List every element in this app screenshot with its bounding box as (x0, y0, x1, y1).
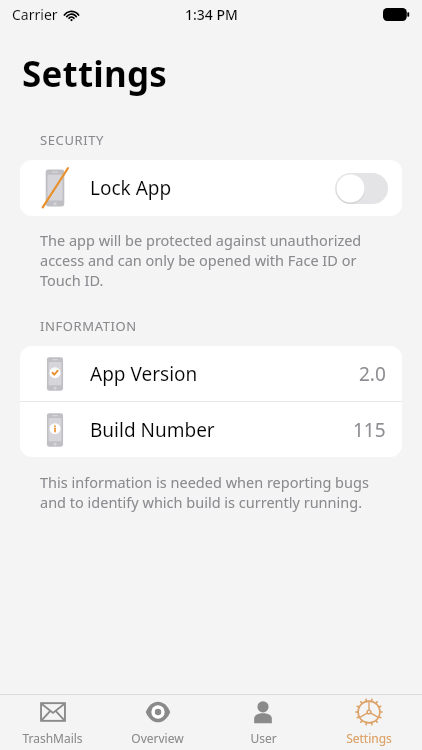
staticText: 1:34 PM (185, 5, 238, 24)
button[interactable]: Build Number (20, 402, 402, 457)
staticText: Carrier (12, 5, 58, 24)
button[interactable]: App Version (20, 346, 402, 401)
button[interactable]: TrashMails (0, 695, 105, 750)
staticText: Lock App (90, 175, 172, 201)
staticText: 2.0 (359, 361, 386, 387)
staticText: User (250, 730, 277, 746)
staticText: Settings (346, 730, 392, 746)
staticText: TrashMails (22, 730, 83, 746)
button[interactable]: Settings (316, 695, 422, 750)
staticText: SECURITY (40, 131, 104, 149)
staticText: Settings (22, 50, 168, 98)
staticText: Overview (131, 730, 184, 746)
button[interactable]: Overview (105, 695, 210, 750)
staticText: This information is needed when reportin… (40, 472, 388, 512)
button[interactable]: Lock App (20, 160, 402, 216)
staticText: Build Number (90, 417, 215, 443)
button[interactable]: User (210, 695, 316, 750)
staticText: App Version (90, 361, 198, 387)
staticText: 115 (353, 417, 386, 443)
staticText: INFORMATION (40, 317, 137, 335)
staticText: The app will be protected against unauth… (40, 230, 388, 290)
